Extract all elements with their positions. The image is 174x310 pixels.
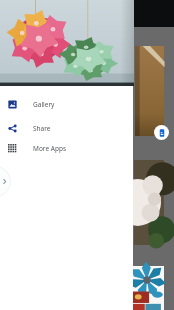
staticText: Share: [33, 124, 51, 133]
button[interactable]: Share: [0, 117, 133, 139]
staticText: More Apps: [33, 144, 67, 153]
button[interactable]: Gallery: [0, 93, 133, 115]
staticText: Gallery: [33, 100, 55, 109]
button[interactable]: More Apps: [0, 137, 133, 159]
button[interactable]: Open in app: [154, 125, 169, 140]
